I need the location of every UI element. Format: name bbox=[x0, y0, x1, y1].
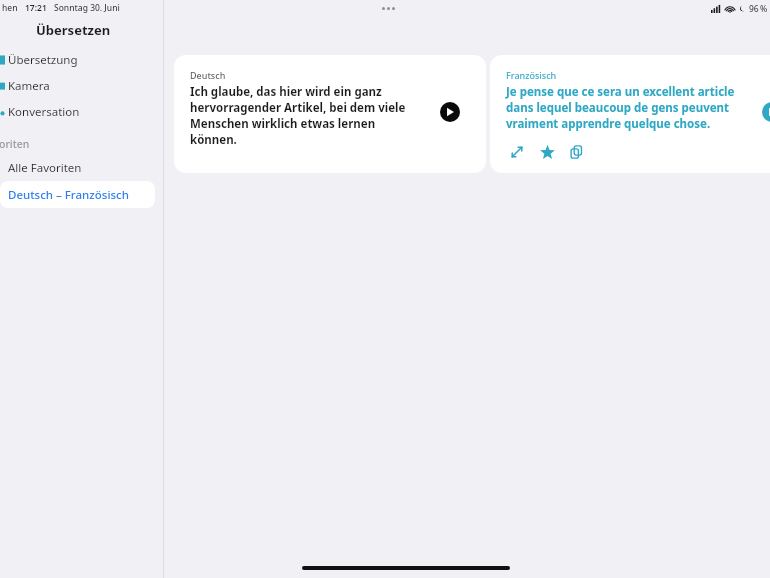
button[interactable]: Französisch bbox=[490, 55, 770, 173]
button[interactable]: Deutsch bbox=[174, 55, 486, 173]
staticText: % bbox=[760, 3, 768, 15]
staticText: 17:21 bbox=[25, 2, 47, 14]
button[interactable]: Favorit bbox=[536, 141, 558, 163]
staticText: hen bbox=[2, 2, 18, 14]
button[interactable]: Alle Favoriten bbox=[0, 155, 164, 181]
staticText: Sonntag 30. Juni bbox=[54, 2, 120, 14]
staticText: Deutsch – Französisch bbox=[8, 187, 129, 203]
button[interactable]: Vollbild bbox=[506, 141, 528, 163]
button[interactable]: Konversation bbox=[0, 99, 164, 125]
staticText: Alle Favoriten bbox=[8, 160, 82, 176]
staticText: Je pense que ce sera un excellent articl… bbox=[506, 84, 746, 132]
staticText: 96 bbox=[749, 3, 759, 15]
button[interactable]: Multitasking-Steuerung bbox=[380, 5, 397, 12]
button[interactable]: Kamera bbox=[0, 73, 164, 99]
staticText: Übersetzen bbox=[36, 21, 111, 39]
staticText: Übersetzung bbox=[8, 52, 78, 68]
button[interactable]: Übersetzung bbox=[0, 47, 164, 73]
button[interactable]: Übersetzung wiedergeben bbox=[760, 100, 770, 124]
button[interactable]: Wiedergabe bbox=[438, 100, 462, 124]
staticText: Deutsch bbox=[190, 69, 226, 81]
button[interactable]: Deutsch – Französisch bbox=[0, 181, 155, 208]
staticText: Kamera bbox=[8, 78, 50, 94]
staticText: Ich glaube, das hier wird ein ganz hervo… bbox=[190, 84, 422, 148]
staticText: oriten bbox=[0, 137, 30, 151]
button[interactable]: Kopieren bbox=[566, 141, 588, 163]
staticText: Französisch bbox=[506, 69, 557, 81]
staticText: Konversation bbox=[8, 104, 80, 120]
